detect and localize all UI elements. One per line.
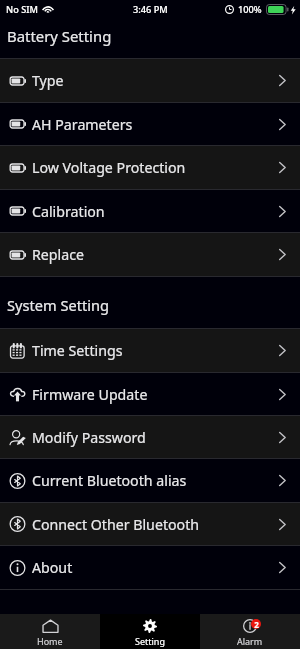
staticText: No SIM: [6, 3, 38, 16]
staticText: Firmware Update: [32, 385, 148, 404]
staticText: Modify Password: [32, 428, 146, 447]
button[interactable]: Firmware Update: [0, 373, 300, 415]
button[interactable]: 2: [200, 614, 300, 649]
staticText: Alarm: [237, 635, 263, 647]
button[interactable]: Home: [0, 614, 100, 649]
button[interactable]: AH Parameters: [0, 103, 300, 145]
button[interactable]: Modify Password: [0, 416, 300, 458]
staticText: AH Parameters: [32, 115, 133, 134]
staticText: 2: [254, 619, 259, 629]
button[interactable]: Low Voltage Protection: [0, 146, 300, 189]
button[interactable]: Setting: [100, 614, 200, 649]
staticText: Time Settings: [32, 341, 123, 360]
button[interactable]: Replace: [0, 233, 300, 276]
button[interactable]: Calibration: [0, 190, 300, 232]
staticText: 100%: [238, 3, 262, 16]
staticText: Battery Setting: [7, 26, 112, 46]
staticText: Connect Other Bluetooth: [32, 515, 200, 534]
staticText: Replace: [32, 245, 84, 264]
staticText: Setting: [135, 635, 165, 647]
staticText: Low Voltage Protection: [32, 158, 186, 177]
button[interactable]: Time Settings: [0, 329, 300, 372]
button[interactable]: Connect Other Bluetooth: [0, 503, 300, 545]
staticText: System Setting: [7, 295, 109, 315]
button[interactable]: About: [0, 546, 300, 589]
staticText: 3:46 PM: [133, 3, 168, 16]
staticText: Current Bluetooth alias: [32, 471, 187, 490]
staticText: About: [32, 558, 73, 577]
staticText: Home: [37, 635, 63, 647]
staticText: Type: [32, 71, 64, 90]
button[interactable]: Type: [0, 59, 300, 102]
button[interactable]: Current Bluetooth alias: [0, 459, 300, 502]
staticText: Calibration: [32, 202, 105, 221]
